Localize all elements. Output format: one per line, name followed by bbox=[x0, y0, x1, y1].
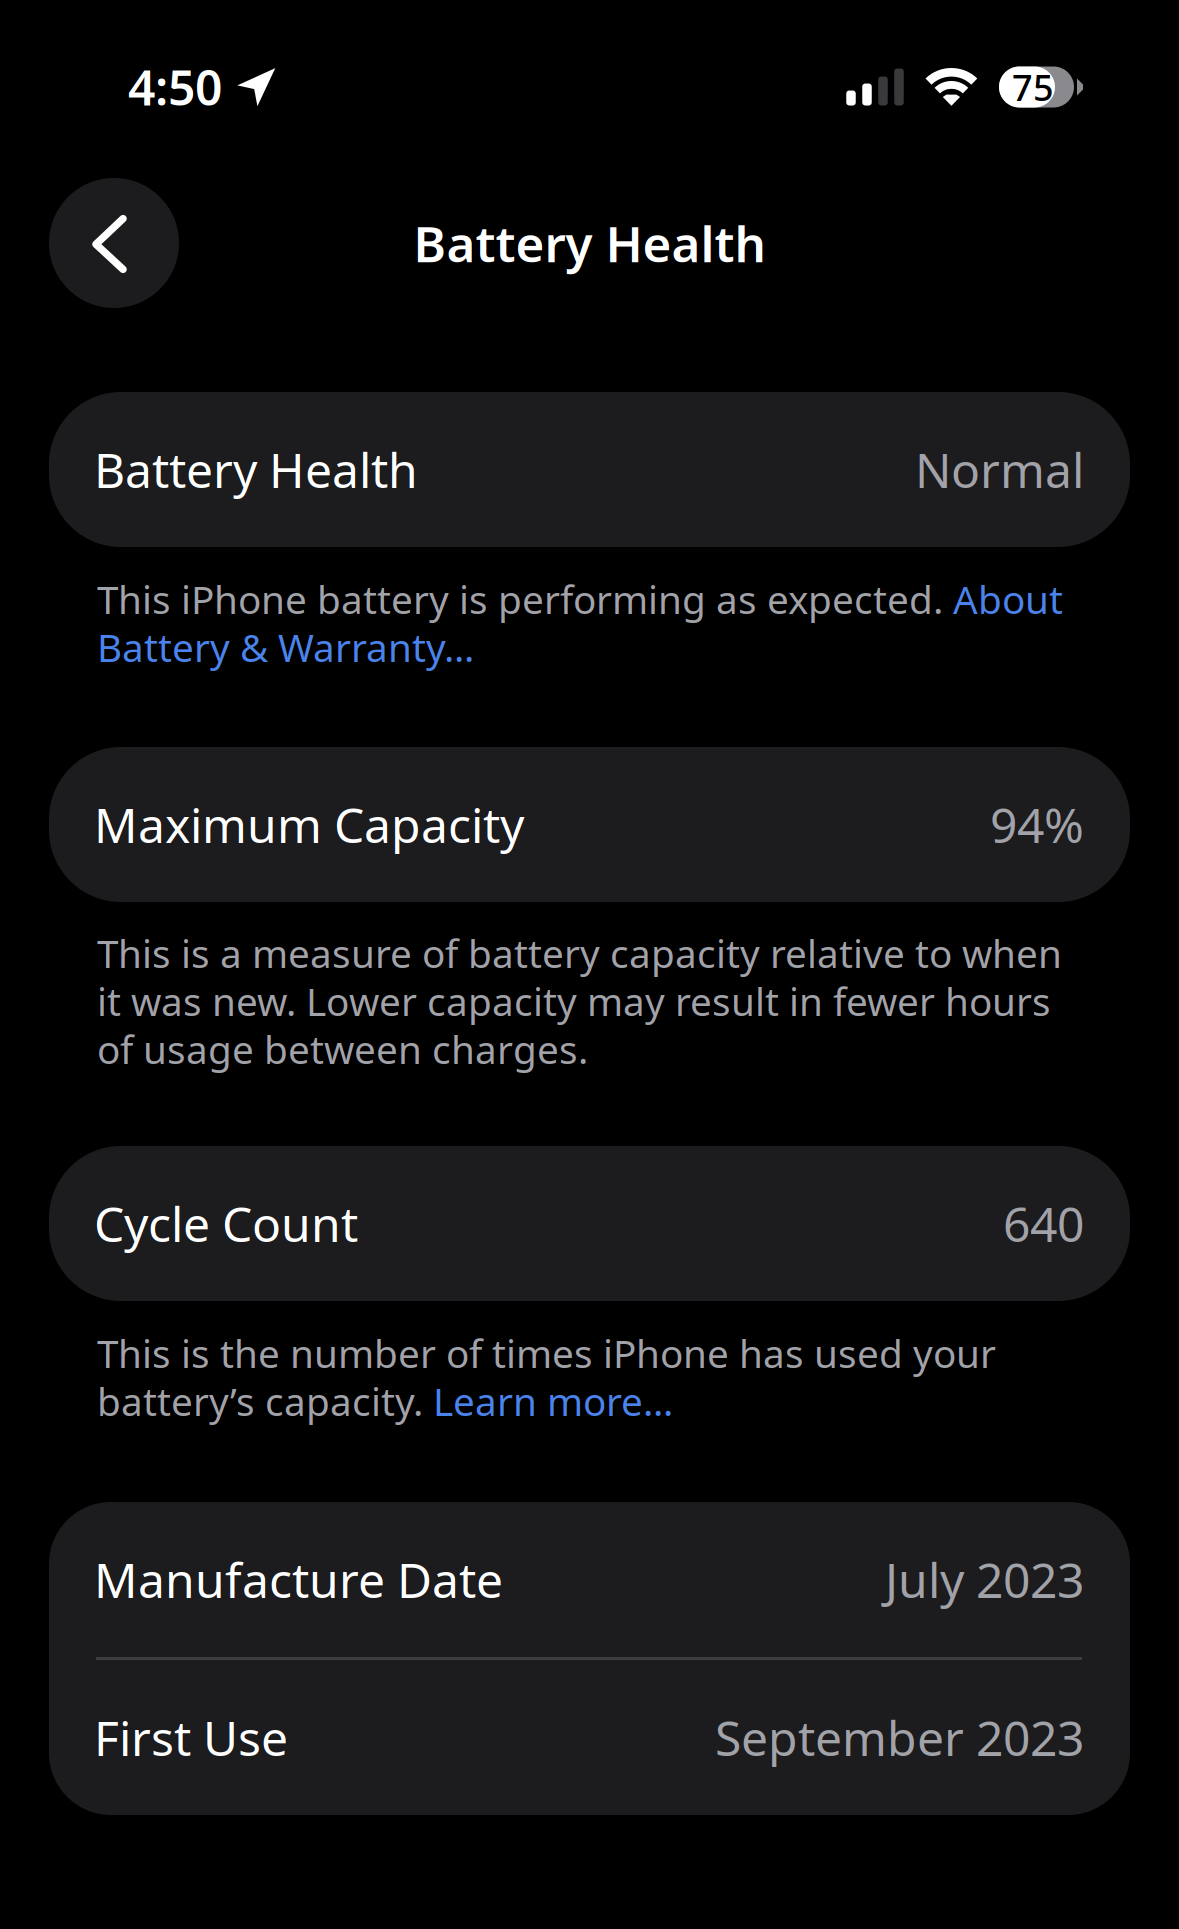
staticText: July 2023 bbox=[885, 1548, 1084, 1611]
staticText: of usage between charges. bbox=[97, 1023, 588, 1075]
staticText: 94% bbox=[990, 793, 1084, 856]
staticText: 640 bbox=[1003, 1192, 1084, 1255]
button[interactable]: Battery & Warranty... bbox=[97, 621, 474, 673]
staticText: About bbox=[953, 573, 1063, 625]
staticText: 4:50 bbox=[128, 55, 222, 119]
staticText: Normal bbox=[915, 438, 1084, 501]
staticText: Battery & Warranty... bbox=[97, 621, 474, 673]
button[interactable]: Back bbox=[49, 178, 179, 308]
staticText: Battery Health bbox=[94, 438, 418, 501]
staticText: it was new. Lower capacity may result in… bbox=[97, 975, 1051, 1027]
staticText: Manufacture Date bbox=[94, 1548, 503, 1611]
staticText: battery’s capacity. bbox=[97, 1375, 433, 1427]
staticText: Battery Health bbox=[413, 210, 765, 276]
staticText: Maximum Capacity bbox=[94, 793, 524, 856]
staticText: First Use bbox=[94, 1706, 288, 1769]
staticText: This iPhone battery is performing as exp… bbox=[97, 573, 953, 625]
staticText: This is the number of times iPhone has u… bbox=[97, 1327, 996, 1379]
staticText: Learn more... bbox=[433, 1375, 673, 1427]
button[interactable]: Learn more... bbox=[433, 1375, 673, 1427]
button[interactable]: About bbox=[953, 573, 1063, 625]
staticText: This is a measure of battery capacity re… bbox=[97, 927, 1062, 979]
staticText: September 2023 bbox=[715, 1706, 1084, 1769]
staticText: 75 bbox=[1012, 63, 1054, 111]
staticText: Cycle Count bbox=[94, 1192, 358, 1255]
